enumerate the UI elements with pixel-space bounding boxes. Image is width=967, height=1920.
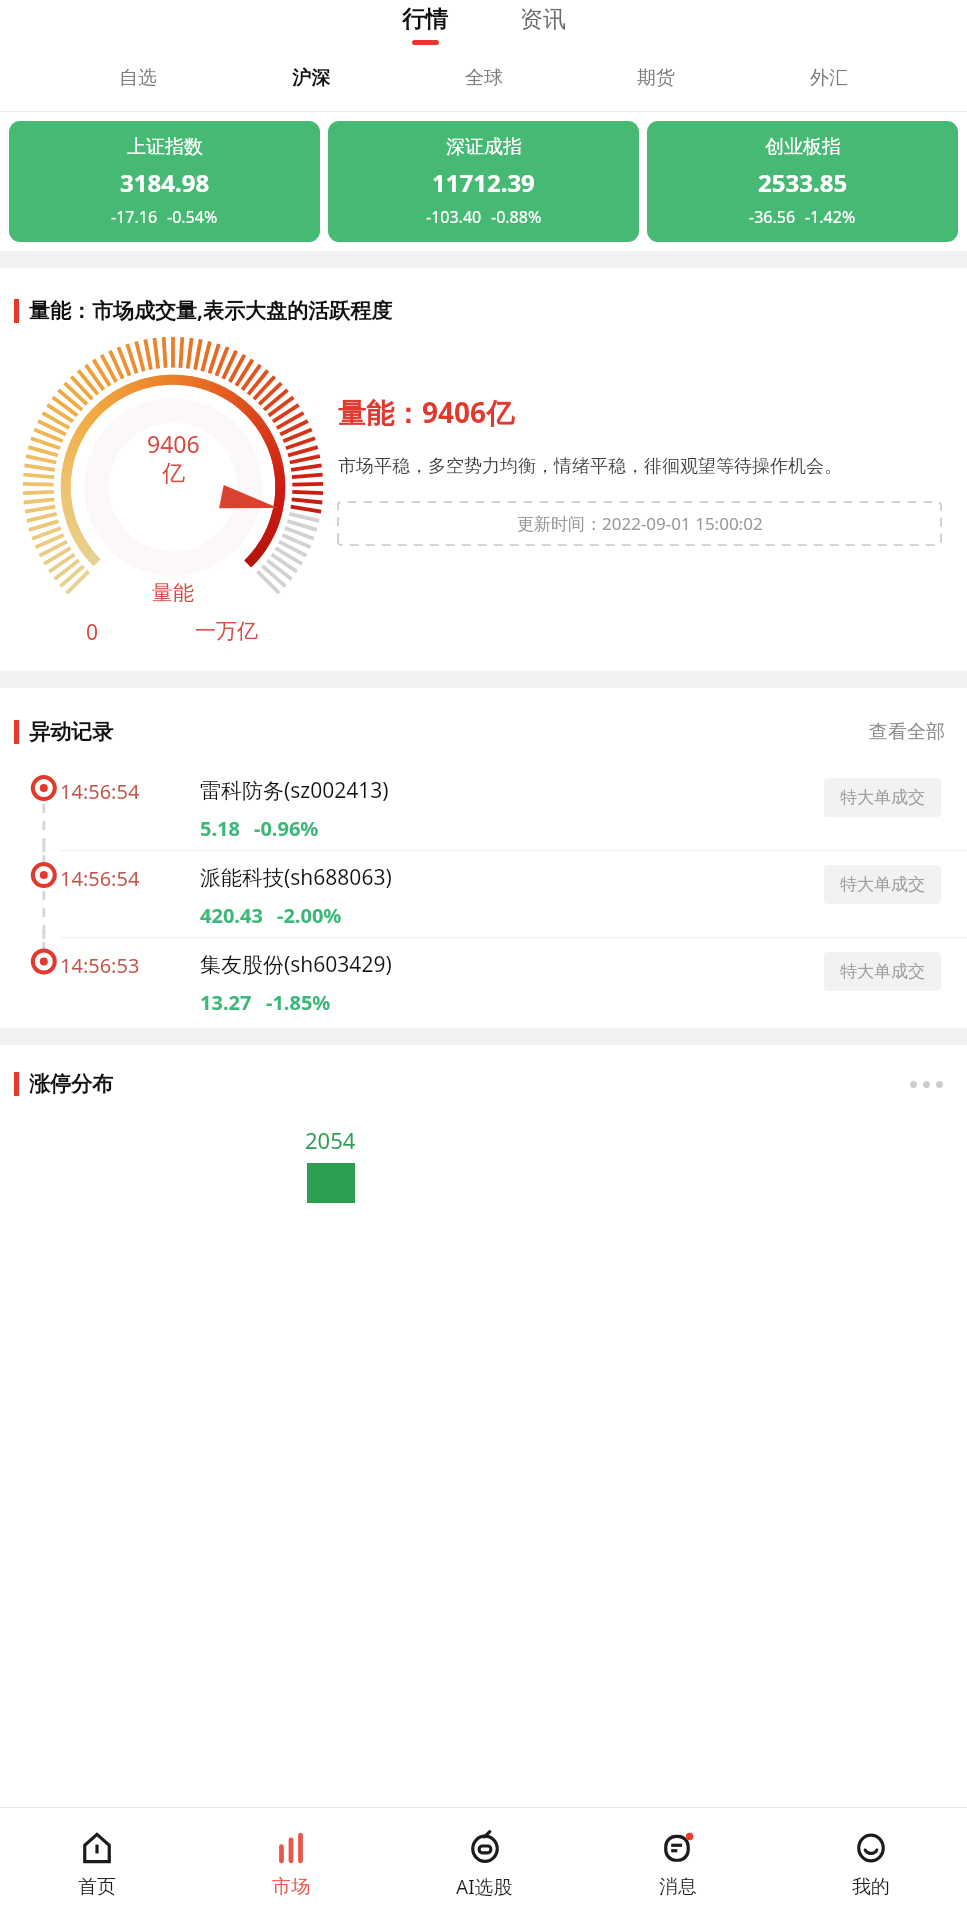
button[interactable]: 深证成指 xyxy=(328,121,639,242)
staticText: -103.40 xyxy=(426,206,482,228)
button[interactable]: More xyxy=(902,1073,951,1096)
staticText: 沪深 xyxy=(292,66,330,90)
staticText: 14:56:54 xyxy=(60,778,140,805)
staticText: 特大单成交 xyxy=(840,874,925,895)
staticText: 上证指数 xyxy=(127,135,203,159)
staticText: 首页 xyxy=(78,1875,116,1899)
button[interactable]: 市场 xyxy=(194,1808,388,1920)
button[interactable]: 外汇 xyxy=(792,61,866,95)
staticText: -0.88% xyxy=(491,206,542,228)
staticText: 量能 xyxy=(152,580,194,606)
staticText: 特大单成交 xyxy=(840,961,925,982)
button[interactable]: 上证指数 xyxy=(9,121,320,242)
staticText: 0 xyxy=(86,618,99,647)
staticText: 行情 xyxy=(402,5,448,34)
staticText: -36.56 xyxy=(749,206,796,228)
button[interactable]: 特大单成交 xyxy=(824,865,941,904)
button[interactable]: 自选 xyxy=(101,61,175,95)
staticText: 市场 xyxy=(272,1875,310,1899)
staticText: 雷科防务(sz002413) xyxy=(200,776,389,805)
staticText: 异动记录 xyxy=(29,719,113,745)
staticText: 深证成指 xyxy=(446,135,522,159)
staticText: -1.85% xyxy=(266,989,331,1016)
staticText: 5.18 xyxy=(200,815,240,842)
staticText: 创业板指 xyxy=(765,135,841,159)
staticText: 量能：市场成交量,表示大盘的活跃程度 xyxy=(29,296,392,325)
button[interactable]: 消息 xyxy=(581,1808,774,1920)
staticText: -0.96% xyxy=(254,815,319,842)
staticText: 2533.85 xyxy=(758,166,848,199)
staticText: -2.00% xyxy=(277,902,342,929)
staticText: 消息 xyxy=(659,1875,697,1899)
staticText: 一万亿 xyxy=(195,618,258,644)
staticText: 13.27 xyxy=(200,989,252,1016)
staticText: 查看全部 xyxy=(869,720,945,744)
staticText: 期货 xyxy=(637,66,675,90)
button[interactable]: 14:56:54 xyxy=(0,851,967,937)
button[interactable]: 沪深 xyxy=(274,61,348,95)
button[interactable]: 首页 xyxy=(0,1808,194,1920)
staticText: 14:56:54 xyxy=(60,865,140,892)
button[interactable]: 查看全部 xyxy=(863,714,951,750)
staticText: 市场平稳，多空势力均衡，情绪平稳，徘徊观望等待操作机会。 xyxy=(338,455,842,478)
button[interactable]: 14:56:54 xyxy=(0,764,967,850)
button[interactable]: 14:56:53 xyxy=(0,938,967,1022)
button[interactable]: AI选股 xyxy=(388,1808,581,1920)
staticText: 全球 xyxy=(465,66,503,90)
staticText: 亿 xyxy=(162,459,185,488)
button[interactable]: 特大单成交 xyxy=(824,778,941,817)
staticText: 特大单成交 xyxy=(840,787,925,808)
staticText: -17.16 xyxy=(111,206,158,228)
staticText: 我的 xyxy=(852,1875,890,1899)
staticText: 11712.39 xyxy=(432,166,535,199)
button[interactable]: 资讯 xyxy=(504,5,582,34)
button[interactable]: 行情 xyxy=(386,5,464,45)
button[interactable]: 我的 xyxy=(774,1808,967,1920)
staticText: 资讯 xyxy=(520,5,566,34)
staticText: 3184.98 xyxy=(120,166,210,199)
staticText: -0.54% xyxy=(167,206,218,228)
staticText: -1.42% xyxy=(805,206,856,228)
button[interactable]: 特大单成交 xyxy=(824,952,941,991)
staticText: 9406 xyxy=(147,428,200,459)
staticText: 自选 xyxy=(119,66,157,90)
button[interactable]: 创业板指 xyxy=(647,121,958,242)
staticText: AI选股 xyxy=(456,1874,513,1900)
staticText: 更新时间：2022-09-01 15:00:02 xyxy=(517,512,763,535)
staticText: 14:56:53 xyxy=(60,952,140,979)
staticText: 派能科技(sh688063) xyxy=(200,863,392,892)
staticText: 2054 xyxy=(305,1125,356,1155)
button[interactable]: 期货 xyxy=(619,61,693,95)
staticText: 420.43 xyxy=(200,902,263,929)
staticText: 涨停分布 xyxy=(29,1071,113,1097)
staticText: 量能：9406亿 xyxy=(338,393,515,431)
staticText: 集友股份(sh603429) xyxy=(200,950,392,979)
button[interactable]: 全球 xyxy=(447,61,521,95)
staticText: 外汇 xyxy=(810,66,848,90)
